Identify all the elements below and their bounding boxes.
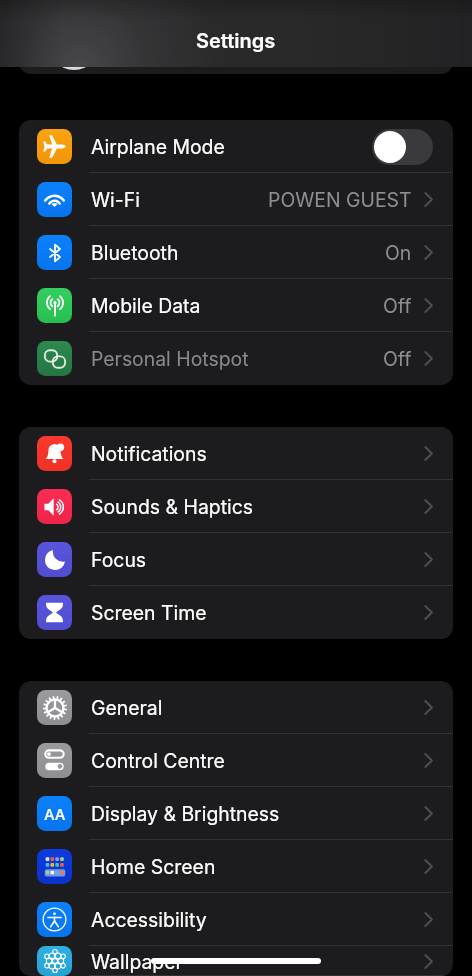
- staticText: Accessibility: [91, 908, 207, 931]
- button[interactable]: Personal Hotspot: [19, 332, 453, 385]
- staticText: Personal Hotspot: [91, 347, 249, 370]
- staticText: AA: [44, 805, 66, 823]
- staticText: POWEN GUEST: [268, 188, 412, 211]
- staticText: Off: [383, 347, 412, 370]
- button[interactable]: Focus: [19, 533, 453, 586]
- button[interactable]: Mobile Data: [19, 279, 453, 332]
- staticText: Notifications: [91, 442, 207, 465]
- button[interactable]: Wi-Fi: [19, 173, 453, 226]
- button[interactable]: Bluetooth: [19, 226, 453, 279]
- button[interactable]: Control Centre: [19, 734, 453, 787]
- staticText: Sounds & Haptics: [91, 495, 254, 518]
- staticText: Home Screen: [91, 855, 216, 878]
- staticText: Control Centre: [91, 749, 225, 772]
- staticText: Wallpaper: [91, 950, 183, 973]
- staticText: Screen Time: [91, 601, 207, 624]
- staticText: Focus: [91, 548, 147, 571]
- staticText: Bluetooth: [91, 241, 179, 264]
- staticText: Display & Brightness: [91, 802, 280, 825]
- staticText: Wi-Fi: [91, 188, 140, 211]
- staticText: Off: [383, 294, 412, 317]
- button[interactable]: Wallpaper: [19, 946, 453, 976]
- button[interactable]: Notifications: [19, 427, 453, 480]
- button[interactable]: Screen Time: [19, 586, 453, 639]
- staticText: General: [91, 696, 163, 719]
- staticText: Airplane Mode: [91, 135, 225, 158]
- button[interactable]: Airplane Mode: [19, 120, 453, 173]
- button[interactable]: Sounds & Haptics: [19, 480, 453, 533]
- button[interactable]: General: [19, 681, 453, 734]
- staticText: Settings: [196, 29, 276, 53]
- button[interactable]: AA: [19, 787, 453, 840]
- button[interactable]: Accessibility: [19, 893, 453, 946]
- button[interactable]: Home Screen: [19, 840, 453, 893]
- staticText: On: [385, 241, 412, 264]
- staticText: Mobile Data: [91, 294, 201, 317]
